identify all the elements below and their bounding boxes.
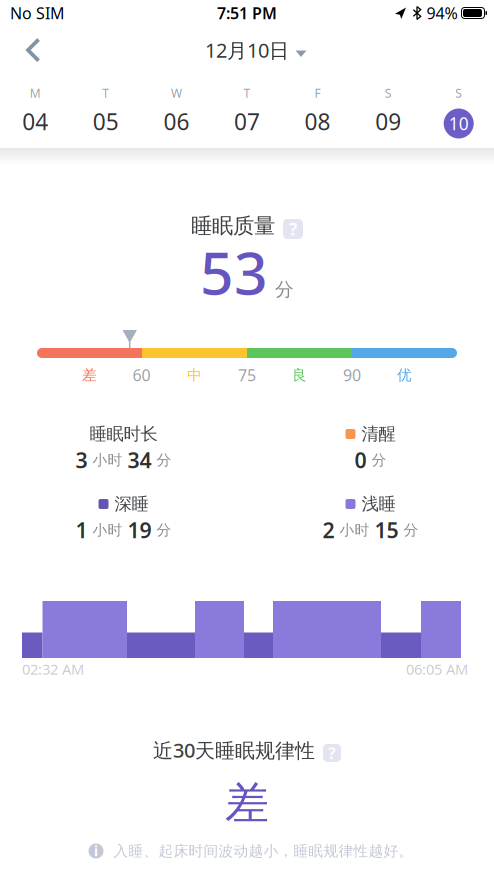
staticText: W	[171, 85, 182, 101]
staticText: 10	[449, 112, 469, 135]
staticText: T	[102, 85, 109, 101]
button[interactable]: S	[353, 87, 423, 136]
staticText: T	[243, 85, 250, 101]
staticText: 深睡	[114, 493, 148, 515]
staticText: F	[315, 85, 321, 101]
staticText: 分	[156, 521, 171, 539]
staticText: 08	[305, 106, 331, 136]
staticText: 浅睡	[361, 493, 395, 515]
staticText: 3	[75, 446, 87, 474]
staticText: 小时	[339, 521, 369, 539]
staticText: 15	[374, 516, 398, 544]
staticText: 入睡、起床时间波动越小，睡眠规律性越好。	[113, 842, 413, 860]
staticText: 2	[322, 516, 334, 544]
staticText: 05	[93, 106, 119, 136]
staticText: 07	[234, 106, 260, 136]
staticText: 良	[292, 366, 307, 384]
button[interactable]: W	[141, 87, 212, 136]
staticText: 06:05 AM	[406, 659, 468, 679]
staticText: 90	[343, 364, 361, 386]
staticText: 06	[163, 106, 189, 136]
staticText: 1	[75, 516, 87, 544]
staticText: 分	[371, 451, 386, 469]
button[interactable]: M	[0, 87, 71, 136]
staticText: ?	[328, 742, 336, 764]
staticText: No SIM	[10, 2, 65, 24]
staticText: 75	[238, 364, 256, 386]
staticText: S	[455, 85, 462, 101]
staticText: 分	[275, 278, 294, 301]
staticText: 34	[127, 446, 151, 474]
staticText: 睡眠时长	[89, 423, 157, 445]
staticText: 02:32 AM	[22, 659, 84, 679]
staticText: 7:51 PM	[217, 2, 277, 24]
staticText: 睡眠质量	[191, 213, 275, 239]
staticText: 中	[187, 366, 202, 384]
staticText: 53	[200, 233, 268, 311]
button[interactable]: Help	[323, 741, 341, 759]
staticText: 分	[156, 451, 171, 469]
staticText: M	[30, 85, 41, 101]
button[interactable]: Help	[283, 216, 303, 236]
staticText: 60	[132, 364, 150, 386]
staticText: 12月10日	[205, 37, 289, 63]
staticText: 09	[375, 106, 401, 136]
staticText: 差	[82, 366, 97, 384]
staticText: 清醒	[361, 423, 395, 445]
staticText: 04	[22, 106, 48, 136]
staticText: 19	[127, 516, 151, 544]
button[interactable]: Back	[0, 31, 41, 68]
button[interactable]: T	[212, 87, 282, 136]
staticText: i	[94, 842, 98, 860]
staticText: 小时	[92, 521, 122, 539]
staticText: 近30天睡眠规律性	[153, 737, 315, 763]
button[interactable]: S	[423, 87, 494, 136]
staticText: 小时	[92, 451, 122, 469]
staticText: 94%	[426, 2, 457, 24]
staticText: S	[385, 85, 392, 101]
staticText: 0	[354, 446, 366, 474]
staticText: 优	[397, 366, 412, 384]
button[interactable]: F	[282, 87, 353, 136]
staticText: 差	[225, 776, 269, 830]
button[interactable]: T	[71, 87, 141, 136]
staticText: 分	[403, 521, 418, 539]
button[interactable]: 12月10日	[205, 37, 289, 63]
staticText: ?	[289, 217, 297, 240]
